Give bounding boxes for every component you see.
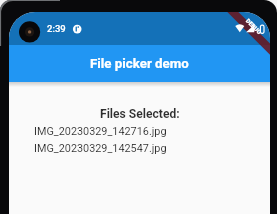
staticText: 2:39: [47, 23, 66, 34]
staticText: Files Selected:: [100, 107, 180, 121]
button[interactable]: IMG_20230329_142547.jpg: [34, 142, 167, 155]
button[interactable]: File picker demo: [90, 56, 189, 72]
staticText: DEBUG: [244, 18, 263, 36]
button[interactable]: IMG_20230329_142716.jpg: [34, 125, 167, 138]
